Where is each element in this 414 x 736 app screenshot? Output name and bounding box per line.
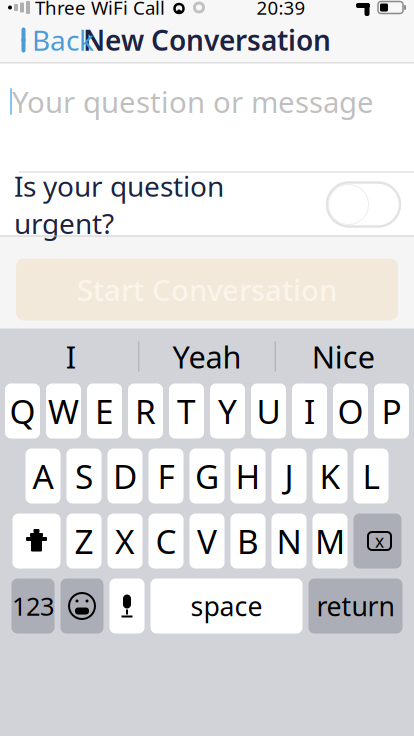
staticText: K (319, 454, 340, 498)
staticText: Y (218, 389, 237, 433)
staticText: S (75, 454, 93, 498)
staticText: F (157, 454, 174, 498)
button[interactable]: Is your question urgent? (327, 182, 400, 226)
button[interactable]: C (148, 513, 183, 568)
button[interactable]: I (292, 383, 327, 438)
staticText: 20:39 (256, 0, 305, 20)
staticText: I (304, 389, 315, 433)
staticText: J (284, 454, 293, 498)
button[interactable]: M (312, 513, 347, 568)
button[interactable]: N (271, 513, 306, 568)
staticText: W (48, 389, 79, 433)
button[interactable]: return (308, 578, 402, 633)
staticText: Back (32, 21, 94, 59)
button[interactable]: X (107, 513, 142, 568)
button[interactable]: P (374, 383, 409, 438)
staticText: Three WiFi Call (35, 0, 165, 20)
button[interactable]: 123 (11, 578, 54, 633)
button[interactable]: Delete (353, 513, 401, 568)
staticText: R (135, 389, 156, 433)
staticText: A (32, 454, 53, 498)
button[interactable]: Dictation (109, 578, 144, 633)
button[interactable]: T (169, 383, 204, 438)
staticText: C (155, 519, 176, 563)
staticText: Your question or message (12, 82, 374, 121)
staticText: Yeah (172, 336, 241, 377)
staticText: return (316, 588, 394, 624)
staticText: Q (9, 389, 35, 433)
button[interactable]: D (107, 448, 142, 503)
staticText: U (256, 389, 280, 433)
button[interactable]: Back (6, 13, 102, 67)
button[interactable]: G (189, 448, 224, 503)
button[interactable]: space (150, 578, 302, 633)
staticText: H (235, 454, 260, 498)
staticText: New Conversation (83, 21, 331, 59)
staticText: Start Conversation (77, 270, 337, 309)
staticText: D (113, 454, 137, 498)
button[interactable]: J (271, 448, 306, 503)
staticText: N (276, 519, 301, 563)
button[interactable]: Emoji (60, 578, 103, 633)
button[interactable]: W (46, 383, 81, 438)
button[interactable]: V (189, 513, 224, 568)
button[interactable]: K (312, 448, 347, 503)
button[interactable]: B (230, 513, 265, 568)
staticText: G (195, 454, 219, 498)
staticText: X (115, 519, 135, 563)
button[interactable]: Y (210, 383, 245, 438)
button[interactable]: F (148, 448, 183, 503)
button[interactable]: E (87, 383, 122, 438)
staticText: E (95, 389, 114, 433)
button[interactable]: H (230, 448, 265, 503)
staticText: V (197, 519, 217, 563)
button[interactable]: Start Conversation (16, 258, 398, 320)
staticText: P (381, 389, 401, 433)
staticText: space (190, 588, 262, 624)
button[interactable]: Shift (12, 513, 60, 568)
staticText: Z (74, 519, 93, 563)
button[interactable]: I (3, 331, 138, 381)
staticText: O (337, 389, 363, 433)
staticText: Nice (312, 336, 375, 377)
staticText: T (177, 389, 196, 433)
button[interactable]: R (128, 383, 163, 438)
staticText: 123 (12, 589, 54, 623)
staticText: I (66, 336, 76, 377)
button[interactable]: Z (66, 513, 101, 568)
staticText: x (375, 529, 384, 552)
staticText: B (237, 519, 259, 563)
staticText: Is your question urgent? (14, 167, 224, 242)
button[interactable]: Yeah (139, 331, 275, 381)
button[interactable]: O (333, 383, 368, 438)
button[interactable]: L (353, 448, 388, 503)
button[interactable]: S (66, 448, 101, 503)
button[interactable]: Nice (276, 331, 411, 381)
button[interactable]: A (25, 448, 60, 503)
button[interactable]: U (251, 383, 286, 438)
staticText: L (362, 454, 379, 498)
button[interactable]: Q (5, 383, 40, 438)
staticText: M (315, 519, 345, 563)
